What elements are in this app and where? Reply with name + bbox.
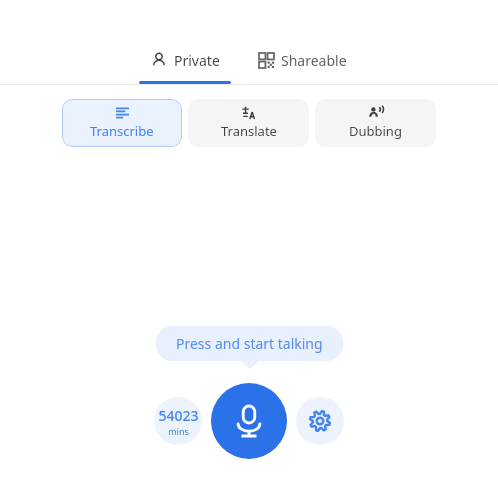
button[interactable]: Settings [296, 397, 344, 445]
button[interactable]: Transcribe [62, 99, 182, 147]
staticText: Transcribe [90, 122, 154, 140]
staticText: Translate [221, 122, 277, 140]
staticText: Shareable [281, 51, 347, 70]
button[interactable]: Translate [188, 99, 309, 147]
staticText: mins [168, 425, 189, 437]
staticText: Press and start talking [176, 334, 323, 353]
staticText: 54023 [158, 406, 199, 425]
button[interactable]: Private [139, 44, 231, 84]
button[interactable]: Record [211, 383, 287, 459]
button[interactable]: 54023 [154, 397, 202, 445]
button[interactable]: Shareable [247, 44, 359, 84]
button[interactable]: Dubbing [315, 99, 436, 147]
staticText: Private [174, 51, 220, 70]
staticText: Dubbing [349, 122, 402, 140]
